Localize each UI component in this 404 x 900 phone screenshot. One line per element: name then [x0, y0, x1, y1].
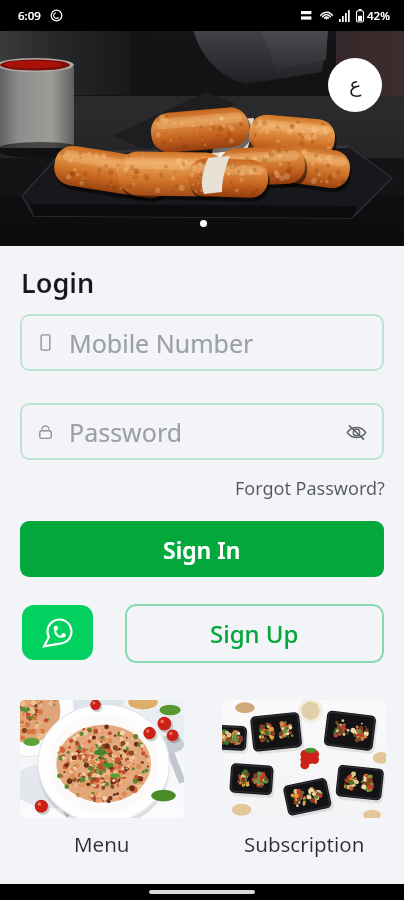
staticText: 6:09	[18, 8, 41, 24]
button[interactable]: Contact on WhatsApp	[22, 605, 93, 660]
button[interactable]: Subscription	[222, 700, 386, 858]
staticText: Mobile Number	[69, 326, 254, 360]
staticText: 42%	[367, 8, 390, 24]
staticText: Password	[69, 415, 183, 449]
staticText: Menu	[74, 830, 130, 858]
button[interactable]: Password	[20, 403, 384, 460]
button[interactable]: Show password	[342, 418, 370, 446]
button[interactable]: Forgot Password?	[235, 476, 385, 501]
staticText: Subscription	[244, 830, 365, 858]
button[interactable]: Sign In	[20, 521, 384, 577]
button[interactable]: Sign Up	[125, 604, 384, 663]
button[interactable]: Menu	[20, 700, 184, 858]
button[interactable]: Change language	[328, 58, 382, 112]
staticText: Forgot Password?	[235, 476, 385, 501]
button[interactable]: Mobile Number	[20, 314, 384, 371]
staticText: Sign In	[163, 534, 241, 565]
staticText: ع	[349, 73, 362, 97]
staticText: Sign Up	[210, 617, 299, 650]
staticText: Login	[21, 264, 95, 301]
